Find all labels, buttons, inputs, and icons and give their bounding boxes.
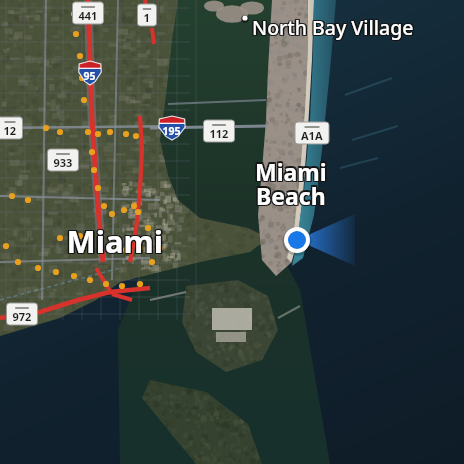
button[interactable]: Map of Miami and Miami Beach [0,0,464,464]
